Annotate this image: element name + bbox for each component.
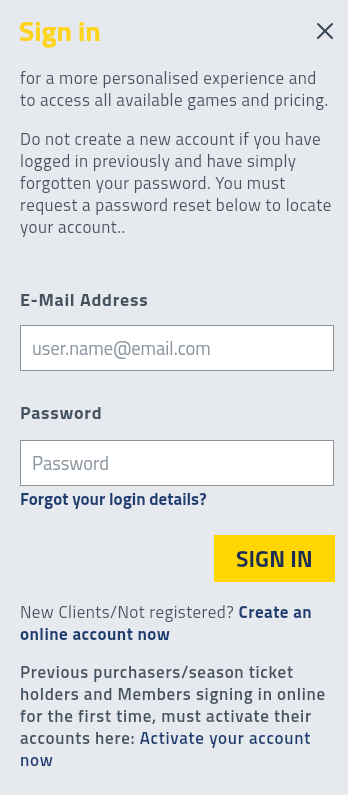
staticText: for a more personalised experience and t… <box>20 65 329 113</box>
button[interactable]: SIGN IN <box>214 535 335 582</box>
staticText: user.name@email.com <box>32 334 211 362</box>
staticText: SIGN IN <box>236 541 313 576</box>
staticText: Password <box>20 399 103 426</box>
button[interactable]: Forgot your login details? <box>20 486 207 512</box>
button[interactable]: user.name@email.com <box>20 325 334 371</box>
button[interactable]: Previous purchasers/season ticket holder… <box>20 659 326 773</box>
staticText: Sign in <box>19 9 101 52</box>
button[interactable]: New Clients/Not registered? Create an on… <box>20 599 313 647</box>
staticText: Password <box>32 449 109 477</box>
staticText: E-Mail Address <box>20 286 149 313</box>
staticText: Do not create a new account if you have … <box>20 126 332 240</box>
button[interactable]: Password <box>20 440 334 486</box>
button[interactable] <box>311 17 339 45</box>
